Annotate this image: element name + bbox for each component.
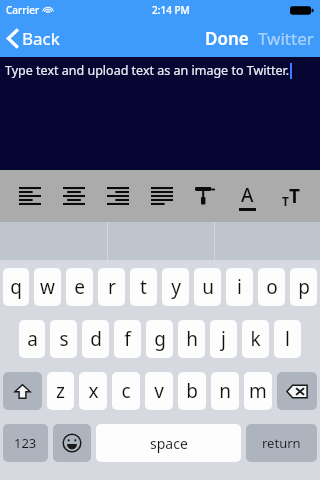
button[interactable]: z bbox=[47, 372, 74, 410]
staticText: j bbox=[221, 326, 226, 352]
button[interactable]: s bbox=[50, 320, 77, 358]
button[interactable]: g bbox=[146, 320, 173, 358]
button[interactable]: i bbox=[226, 268, 253, 306]
button[interactable]: h bbox=[178, 320, 205, 358]
button[interactable]: v bbox=[145, 372, 173, 410]
staticText: return bbox=[262, 434, 301, 452]
button[interactable]: Align left bbox=[8, 170, 52, 222]
button[interactable]: Highlight color bbox=[183, 170, 226, 222]
button[interactable]: a bbox=[19, 320, 45, 358]
staticText: d bbox=[90, 326, 102, 352]
button[interactable]: p bbox=[290, 268, 317, 306]
button[interactable]: c bbox=[112, 372, 140, 410]
staticText: i bbox=[237, 274, 242, 300]
staticText: l bbox=[285, 326, 290, 352]
staticText: e bbox=[74, 274, 85, 300]
button[interactable]: 123 bbox=[3, 424, 48, 462]
button[interactable]: Justify bbox=[140, 170, 183, 222]
staticText: p bbox=[298, 274, 310, 300]
staticText: s bbox=[59, 326, 69, 352]
button[interactable]: Shift bbox=[3, 372, 42, 410]
staticText: Done bbox=[205, 27, 249, 50]
staticText: y bbox=[171, 274, 181, 300]
staticText: f bbox=[124, 326, 131, 352]
button[interactable]: Align right bbox=[96, 170, 140, 222]
button[interactable]: k bbox=[242, 320, 269, 358]
staticText: space bbox=[150, 434, 188, 453]
button[interactable]: Text size bbox=[269, 170, 312, 222]
button[interactable]: j bbox=[210, 320, 237, 358]
staticText: g bbox=[154, 326, 166, 352]
staticText: u bbox=[202, 274, 214, 300]
button[interactable]: Backspace bbox=[277, 372, 317, 410]
button[interactable]: x bbox=[79, 372, 107, 410]
button[interactable]: space bbox=[96, 424, 241, 462]
button[interactable]: e bbox=[66, 268, 93, 306]
button[interactable]: m bbox=[244, 372, 272, 410]
button[interactable]: Emoji bbox=[53, 424, 91, 462]
button[interactable]: n bbox=[211, 372, 239, 410]
button[interactable]: d bbox=[82, 320, 109, 358]
button[interactable]: return bbox=[246, 424, 317, 462]
button[interactable]: Twitter bbox=[254, 22, 320, 55]
staticText: 2:14 PM bbox=[152, 3, 190, 17]
button[interactable]: Align center bbox=[52, 170, 96, 222]
button[interactable]: q bbox=[3, 268, 29, 306]
staticText: r bbox=[108, 274, 116, 300]
staticText: v bbox=[154, 378, 164, 404]
staticText: T bbox=[282, 193, 289, 209]
staticText: Carrier bbox=[6, 3, 40, 17]
button[interactable]: f bbox=[114, 320, 141, 358]
staticText: 123 bbox=[14, 434, 37, 452]
staticText: T bbox=[289, 183, 300, 209]
button[interactable]: t bbox=[130, 268, 157, 306]
button[interactable]: Text color bbox=[226, 170, 269, 222]
staticText: n bbox=[219, 378, 231, 404]
staticText: Twitter bbox=[258, 27, 314, 50]
staticText: x bbox=[88, 378, 99, 404]
staticText: c bbox=[121, 378, 131, 404]
staticText: z bbox=[56, 378, 65, 404]
button[interactable]: u bbox=[194, 268, 221, 306]
staticText: t bbox=[140, 274, 147, 300]
button[interactable]: r bbox=[98, 268, 125, 306]
staticText: a bbox=[27, 326, 38, 352]
staticText: w bbox=[40, 274, 55, 300]
staticText: o bbox=[266, 274, 278, 300]
staticText: k bbox=[250, 326, 261, 352]
staticText: h bbox=[186, 326, 198, 352]
staticText: b bbox=[186, 378, 198, 404]
staticText: m bbox=[249, 378, 267, 404]
button[interactable]: Done bbox=[200, 22, 254, 55]
button[interactable]: o bbox=[258, 268, 285, 306]
staticText: q bbox=[10, 274, 22, 300]
button[interactable]: w bbox=[34, 268, 61, 306]
button[interactable]: b bbox=[178, 372, 206, 410]
button[interactable]: Back bbox=[0, 23, 70, 54]
staticText: Back bbox=[22, 27, 60, 50]
button[interactable]: l bbox=[274, 320, 301, 358]
staticText: A bbox=[241, 182, 254, 208]
staticText: Type text and upload text as an image to… bbox=[5, 62, 290, 79]
button[interactable]: y bbox=[162, 268, 189, 306]
